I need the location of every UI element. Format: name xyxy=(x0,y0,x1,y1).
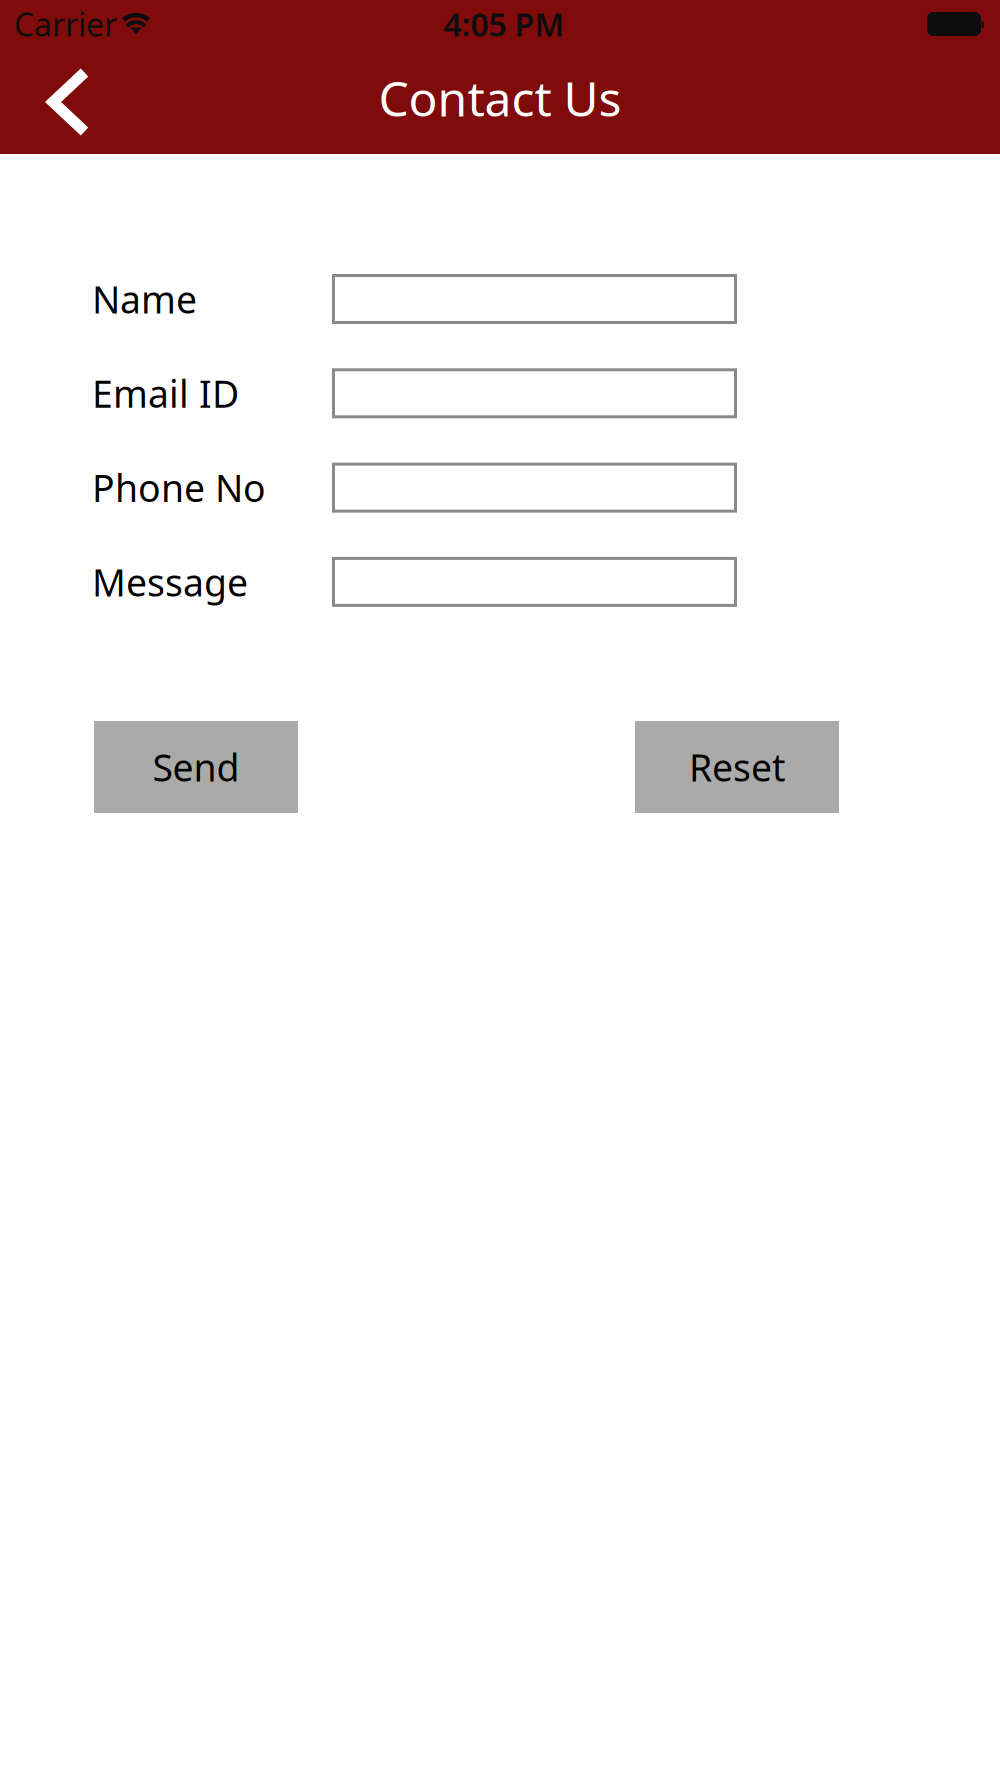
button[interactable]: Send xyxy=(94,721,298,813)
staticText: Contact Us xyxy=(378,66,621,130)
button[interactable]: Phone No xyxy=(333,464,735,511)
button[interactable]: Email ID xyxy=(333,370,735,417)
button[interactable]: Name xyxy=(333,275,735,322)
staticText: Message xyxy=(92,557,248,607)
button[interactable]: Reset xyxy=(635,721,839,813)
staticText: 4:05 PM xyxy=(443,3,564,45)
staticText: Carrier xyxy=(14,3,117,45)
button[interactable]: Message xyxy=(333,558,735,605)
staticText: Email ID xyxy=(92,368,239,418)
staticText: Name xyxy=(92,274,197,324)
staticText: Reset xyxy=(689,742,785,792)
staticText: Send xyxy=(152,742,239,792)
button[interactable]: Back xyxy=(22,49,116,155)
staticText: Phone No xyxy=(92,463,266,512)
